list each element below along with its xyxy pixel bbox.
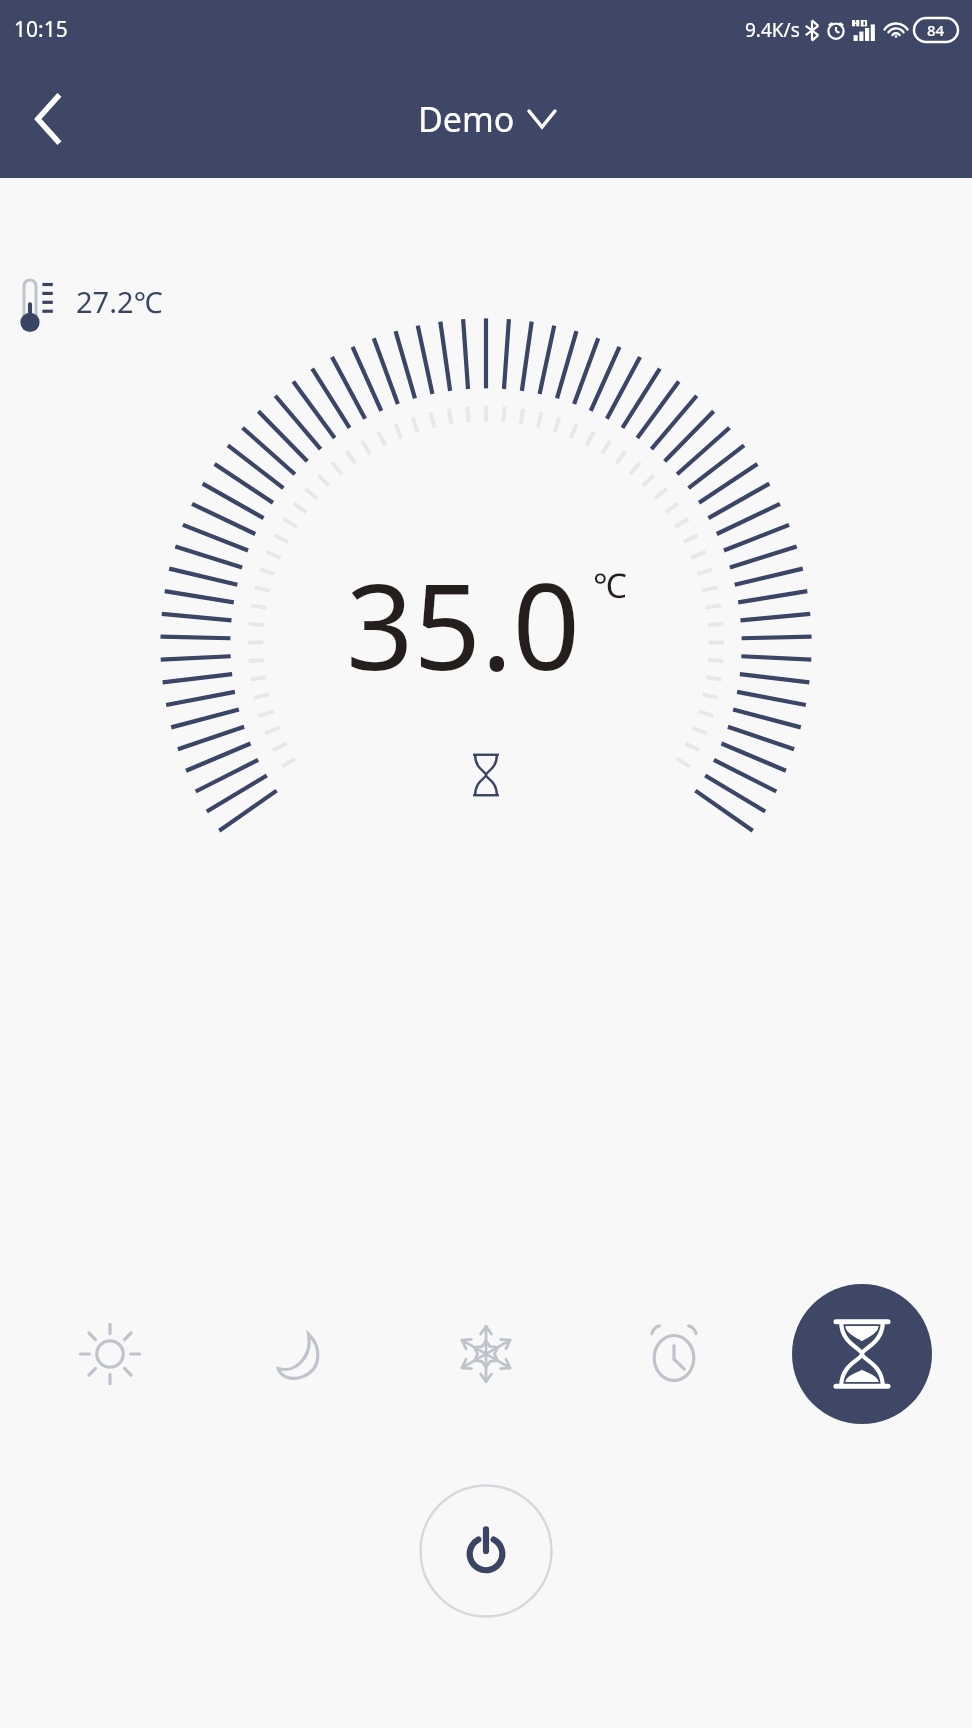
button[interactable]: Day mode xyxy=(40,1284,180,1424)
button[interactable]: Night mode xyxy=(228,1284,368,1424)
button[interactable]: Schedule xyxy=(604,1284,744,1424)
staticText: 27.2℃ xyxy=(76,282,163,321)
button[interactable]: Timer mode xyxy=(792,1284,932,1424)
button[interactable]: Demo xyxy=(418,96,555,142)
staticText: 9.4K/s xyxy=(745,17,800,43)
button[interactable]: Back xyxy=(10,81,86,157)
staticText: 35.0 xyxy=(346,544,581,705)
staticText: ℃ xyxy=(593,562,627,608)
staticText: 84 xyxy=(927,20,945,40)
button[interactable]: Cool mode xyxy=(416,1284,556,1424)
staticText: 10:15 xyxy=(14,15,68,44)
button[interactable]: Power xyxy=(419,1484,553,1618)
staticText: Demo xyxy=(418,96,515,142)
